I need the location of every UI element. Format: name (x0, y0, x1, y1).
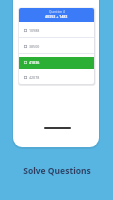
button[interactable]: 41836 (19, 54, 94, 70)
staticText: 38500 (29, 44, 40, 49)
button[interactable]: 10988 (19, 22, 94, 38)
staticText: 41836 (29, 60, 40, 65)
button[interactable]: 38500 (19, 38, 94, 54)
staticText: 42078 (29, 75, 40, 80)
staticText: 40353 + 1483 (45, 14, 68, 19)
button[interactable]: 42078 (19, 70, 94, 84)
staticText: Question 4 (49, 10, 65, 14)
staticText: Solve Questions (23, 165, 91, 177)
staticText: 10988 (29, 28, 40, 33)
